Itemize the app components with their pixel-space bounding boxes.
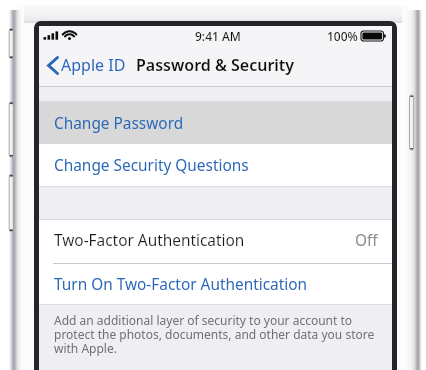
button[interactable]: Two-Factor Authentication [39,220,392,264]
button[interactable]: Back [47,54,126,76]
staticText: Apple ID [61,54,126,76]
staticText: Add an additional layer of security to y… [54,312,379,357]
staticText: Turn On Two-Factor Authentication [54,274,308,295]
staticText: 9:41 AM [195,28,241,44]
staticText: Two-Factor Authentication [54,230,245,251]
staticText: Off [355,230,378,251]
staticText: Password & Security [136,54,295,76]
button[interactable]: Change Password [39,102,392,144]
staticText: 100% [327,28,358,44]
button[interactable]: Turn On Two-Factor Authentication [39,264,392,304]
button[interactable]: Change Security Questions [39,144,392,186]
staticText: Change Password [54,113,184,134]
staticText: Change Security Questions [54,155,249,176]
other: Back [47,56,59,75]
